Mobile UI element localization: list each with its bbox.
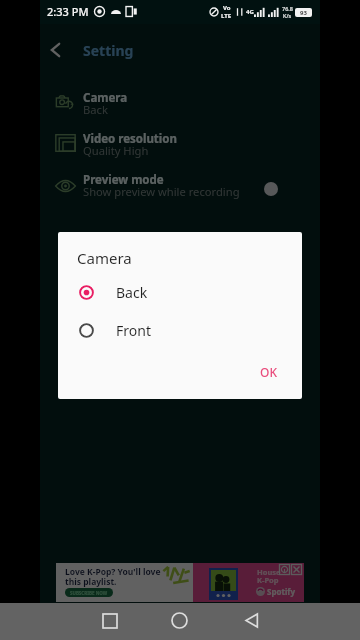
button[interactable]: Home	[164, 605, 195, 636]
button[interactable]: Video resolution	[40, 127, 320, 168]
button[interactable]: OK	[251, 360, 285, 384]
staticText: Quality High	[83, 143, 149, 158]
button[interactable]: Close ad	[291, 564, 302, 575]
button[interactable]: Back	[35, 30, 75, 70]
staticText: Camera	[83, 90, 128, 106]
button[interactable]: Toggle preview mode	[257, 175, 285, 203]
staticText: Show preview while recording	[83, 184, 240, 199]
staticText: 76.8	[282, 5, 293, 12]
staticText: Spotify	[267, 586, 295, 597]
staticText: this playlist.	[65, 576, 117, 588]
staticText: SUBSCRIBE NOW	[70, 590, 108, 596]
staticText: 2:33 PM	[47, 4, 89, 19]
staticText: Love K-Pop? You'll love	[65, 566, 161, 578]
button[interactable]: Back	[236, 605, 267, 636]
staticText: K-Pop	[257, 575, 279, 585]
button[interactable]: Ad information	[279, 564, 290, 575]
staticText: Video resolution	[83, 131, 177, 147]
staticText: Camera	[77, 248, 132, 268]
button[interactable]: Preview mode	[40, 168, 320, 209]
staticText: Vo	[223, 4, 231, 12]
button[interactable]: Front	[58, 311, 302, 349]
staticText: Setting	[83, 41, 134, 60]
staticText: Back	[116, 283, 148, 302]
staticText: 93	[300, 9, 307, 17]
staticText: 4G	[246, 8, 254, 16]
staticText: LTE	[221, 12, 232, 20]
staticText: K/s	[283, 12, 292, 19]
button[interactable]: Love K-Pop? You'll love	[56, 563, 304, 602]
button[interactable]: Camera	[40, 86, 320, 127]
staticText: Preview mode	[83, 172, 164, 188]
button[interactable]: Back	[58, 273, 302, 311]
staticText: OK	[260, 364, 277, 380]
button[interactable]: Recents	[94, 605, 125, 636]
staticText: Front	[116, 321, 151, 340]
staticText: Back	[83, 102, 108, 117]
staticText: House	[257, 567, 281, 577]
